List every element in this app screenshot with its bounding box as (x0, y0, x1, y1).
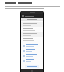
button[interactable] (21, 18, 43, 21)
button[interactable] (21, 27, 43, 32)
button[interactable]: Link icon (21, 58, 43, 63)
button[interactable]: Link icon (21, 48, 43, 53)
button[interactable] (25, 65, 39, 68)
button[interactable] (21, 32, 43, 37)
button[interactable] (21, 37, 43, 42)
button[interactable]: Menu (21, 14, 43, 18)
button[interactable]: Link icon (21, 53, 43, 58)
button[interactable] (21, 22, 43, 27)
button[interactable]: Link icon (21, 43, 43, 48)
